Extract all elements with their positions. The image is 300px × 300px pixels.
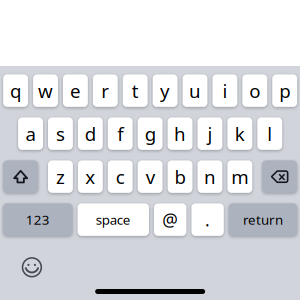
button[interactable]: v <box>138 160 163 193</box>
staticText: x <box>85 164 95 189</box>
button[interactable]: 123 <box>3 203 72 236</box>
staticText: f <box>117 121 123 146</box>
button[interactable]: k <box>227 117 252 150</box>
button[interactable]: d <box>78 117 103 150</box>
staticText: @ <box>162 208 178 231</box>
staticText: h <box>174 121 186 146</box>
button[interactable]: Emoji <box>22 257 42 277</box>
staticText: k <box>235 121 245 146</box>
staticText: s <box>56 121 65 146</box>
button[interactable]: Shift <box>3 160 38 193</box>
staticText: r <box>101 78 109 103</box>
staticText: . <box>205 208 210 231</box>
button[interactable]: s <box>48 117 73 150</box>
button[interactable]: c <box>108 160 133 193</box>
staticText: z <box>56 164 65 189</box>
button[interactable]: Delete <box>262 160 297 193</box>
button[interactable]: w <box>33 74 58 107</box>
button[interactable]: j <box>197 117 222 150</box>
staticText: space <box>96 211 131 228</box>
button[interactable]: z <box>48 160 73 193</box>
button[interactable]: u <box>183 74 207 107</box>
staticText: e <box>70 78 81 103</box>
button[interactable]: m <box>227 160 252 193</box>
staticText: i <box>222 78 227 103</box>
staticText: d <box>85 121 96 146</box>
button[interactable]: return <box>229 203 297 236</box>
staticText: g <box>145 121 156 146</box>
staticText: q <box>10 78 21 103</box>
button[interactable]: o <box>242 74 267 107</box>
button[interactable]: p <box>272 74 297 107</box>
staticText: t <box>132 78 139 103</box>
staticText: c <box>116 164 125 189</box>
staticText: o <box>249 78 260 103</box>
button[interactable]: @ <box>154 203 186 236</box>
button[interactable]: a <box>18 117 43 150</box>
staticText: 123 <box>26 211 50 228</box>
button[interactable]: i <box>212 74 237 107</box>
staticText: y <box>160 78 170 103</box>
button[interactable]: n <box>197 160 222 193</box>
button[interactable]: h <box>168 117 192 150</box>
button[interactable]: t <box>123 74 148 107</box>
button[interactable]: space <box>77 203 149 236</box>
staticText: j <box>207 121 212 146</box>
button[interactable]: . <box>191 203 224 236</box>
staticText: m <box>231 164 248 189</box>
staticText: return <box>243 211 283 228</box>
staticText: p <box>279 78 290 103</box>
staticText: v <box>146 164 155 189</box>
button[interactable]: b <box>168 160 192 193</box>
staticText: n <box>204 164 216 189</box>
button[interactable]: y <box>153 74 178 107</box>
staticText: w <box>38 78 53 103</box>
button[interactable]: q <box>3 74 28 107</box>
staticText: b <box>175 164 186 189</box>
button[interactable]: l <box>257 117 282 150</box>
staticText: l <box>267 121 272 146</box>
button[interactable]: f <box>108 117 133 150</box>
button[interactable]: g <box>138 117 163 150</box>
button[interactable]: r <box>93 74 118 107</box>
staticText: u <box>189 78 201 103</box>
staticText: a <box>25 121 35 146</box>
button[interactable]: x <box>78 160 103 193</box>
button[interactable]: e <box>63 74 88 107</box>
